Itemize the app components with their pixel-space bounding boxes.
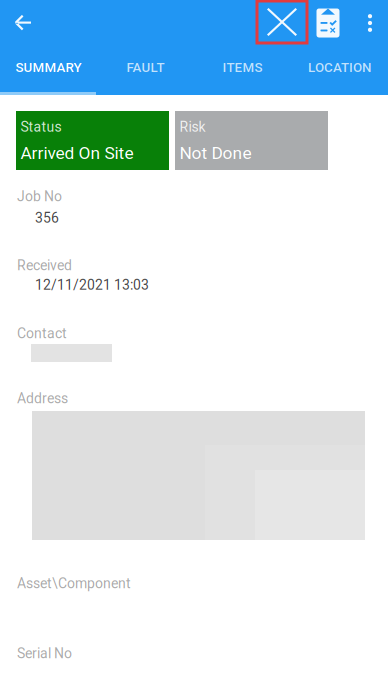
- button[interactable]: FAULT: [97, 45, 194, 90]
- staticText: Serial No: [17, 645, 72, 662]
- staticText: ITEMS: [222, 60, 262, 75]
- button[interactable]: SUMMARY: [0, 45, 97, 90]
- staticText: Asset\Component: [17, 575, 131, 592]
- staticText: Address: [17, 390, 68, 407]
- button[interactable]: Status: [16, 111, 169, 170]
- staticText: 12/11/2021 13:03: [35, 277, 149, 293]
- staticText: Arrived On Site: [20, 143, 133, 163]
- button[interactable]: More options: [352, 1, 388, 45]
- button[interactable]: Close: [257, 1, 307, 43]
- button[interactable]: Back: [1, 1, 45, 45]
- staticText: Status: [20, 119, 61, 135]
- staticText: Risk: [179, 119, 205, 135]
- button[interactable]: Risk: [175, 111, 328, 170]
- staticText: LOCATION: [308, 60, 371, 75]
- staticText: Contact: [17, 325, 67, 342]
- button[interactable]: ITEMS: [194, 45, 291, 90]
- button[interactable]: Checklist: [306, 1, 350, 45]
- staticText: SUMMARY: [15, 60, 81, 75]
- button[interactable]: LOCATION: [291, 45, 388, 90]
- staticText: 356: [35, 210, 59, 226]
- staticText: Received: [17, 257, 72, 274]
- staticText: FAULT: [126, 60, 164, 75]
- staticText: Not Done: [179, 143, 251, 163]
- staticText: Job No: [17, 188, 62, 205]
